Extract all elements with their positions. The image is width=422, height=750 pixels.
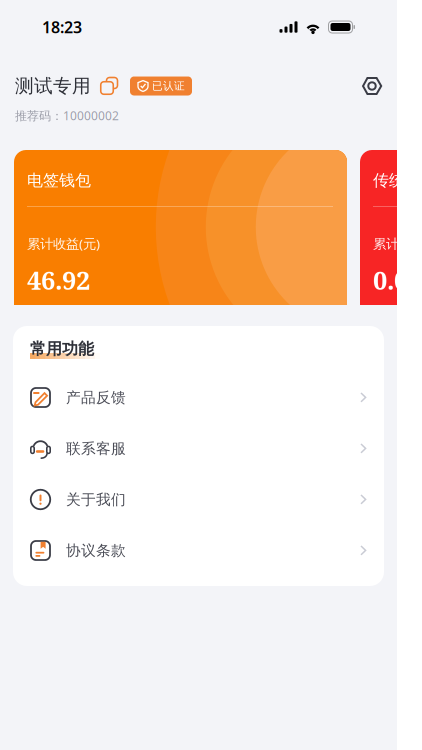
button[interactable]: 联系客服 (13, 423, 384, 474)
staticText: 电签钱包 (27, 171, 91, 190)
button[interactable]: 已认证 (130, 76, 192, 95)
staticText: 关于我们 (66, 490, 126, 508)
staticText: 累计收益(元) (373, 235, 422, 252)
staticText: 传统钱包 (373, 171, 422, 190)
button[interactable]: Copy (99, 76, 119, 96)
button[interactable]: 产品反馈 (13, 372, 384, 423)
staticText: 联系客服 (66, 439, 126, 457)
staticText: 0.00 (373, 263, 422, 297)
staticText: 协议条款 (66, 541, 126, 559)
staticText: 已认证 (152, 79, 185, 92)
button[interactable]: 关于我们 (13, 474, 384, 525)
staticText: 18:23 (42, 16, 82, 38)
staticText: 测试专用 (15, 74, 91, 97)
staticText: 46.92 (27, 263, 90, 297)
staticText: 推荐码：10000002 (15, 107, 119, 123)
staticText: 累计收益(元) (27, 235, 100, 252)
staticText: 常用功能 (30, 339, 94, 359)
button[interactable]: Settings (362, 76, 382, 96)
staticText: 产品反馈 (66, 388, 126, 406)
button[interactable]: 协议条款 (13, 525, 384, 576)
